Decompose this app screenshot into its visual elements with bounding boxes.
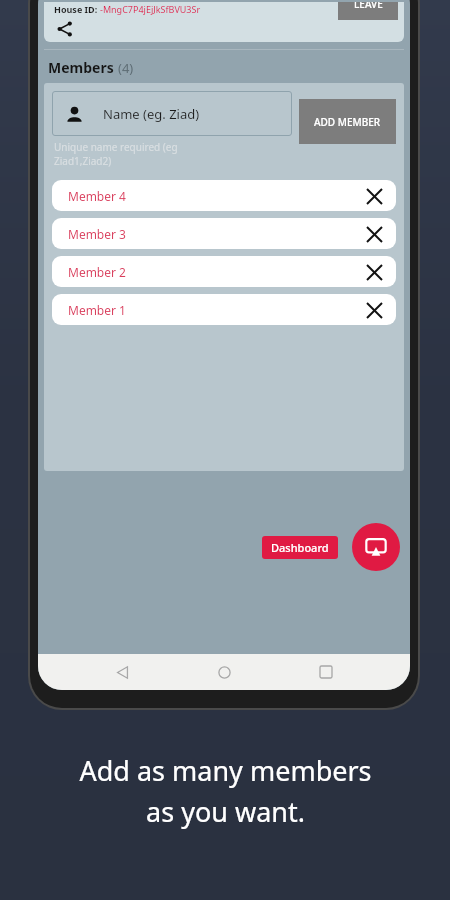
staticText: Member 2 [68,264,126,280]
staticText: as you want. [146,793,305,830]
button[interactable]: Member 2 [52,256,396,287]
staticText: Dashboard [271,540,329,555]
button[interactable]: Dashboard [352,523,400,571]
staticText: (4) [118,59,134,77]
staticText: Name (eg. Ziad) [103,105,200,123]
button[interactable]: Remove Member 4 [363,185,385,207]
button[interactable]: Home [206,654,242,690]
staticText: -MngC7P4jEjJkSfBVU3Sr [100,3,201,15]
staticText: Members [48,58,114,77]
button[interactable]: Member 3 [52,218,396,249]
button[interactable]: Member 4 [52,180,396,211]
button[interactable]: Remove Member 2 [363,261,385,283]
staticText: ADD MEMBER [314,115,381,129]
staticText: Member 4 [68,188,126,204]
button[interactable]: Dashboard [262,536,338,559]
staticText: Member 3 [68,226,126,242]
staticText: Member 1 [68,302,126,318]
staticText: Add as many members [79,752,372,789]
staticText: Ziad1,Ziad2) [54,154,112,168]
button[interactable]: Remove Member 1 [363,299,385,321]
button[interactable]: Name (eg. Ziad) [52,91,292,136]
button[interactable]: Share [52,16,78,42]
button[interactable]: Back [104,654,140,690]
button[interactable]: LEAVE [338,2,398,20]
staticText: LEAVE [354,2,383,11]
staticText: House ID: [54,3,100,15]
button[interactable]: ADD MEMBER [299,99,396,144]
button[interactable]: Remove Member 3 [363,223,385,245]
staticText: Unique name required (eg [54,140,178,154]
button[interactable]: Member 1 [52,294,396,325]
button[interactable]: Recents [308,654,344,690]
